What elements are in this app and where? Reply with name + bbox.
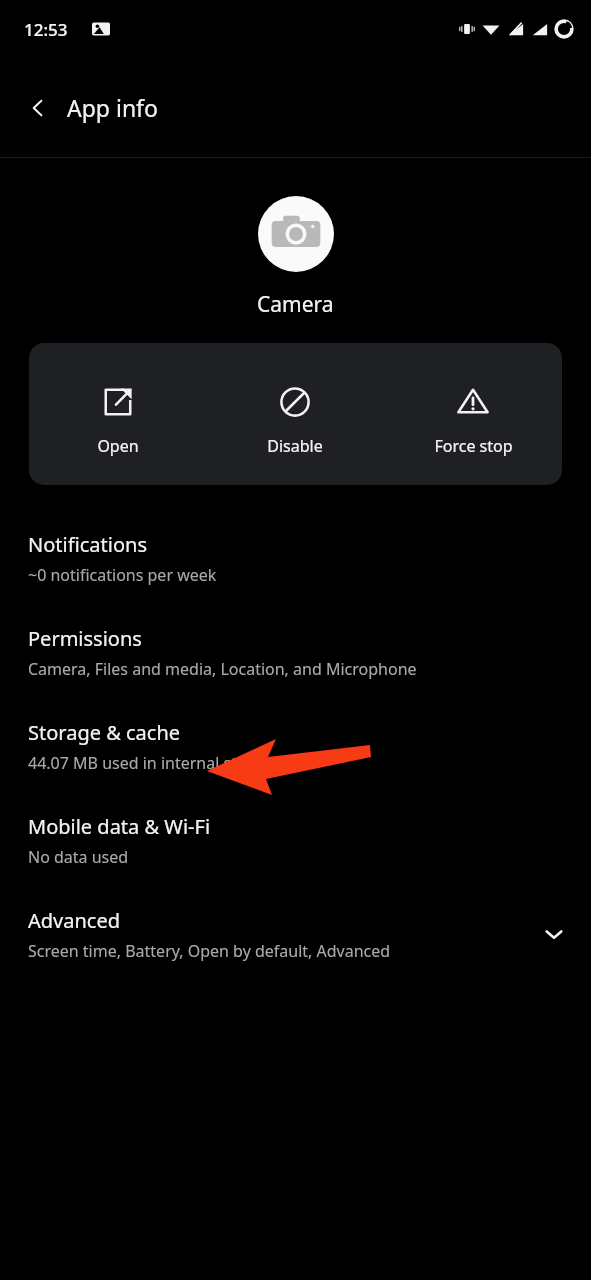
staticText: ~0 notifications per week (28, 564, 217, 586)
button[interactable]: Disable (206, 371, 384, 457)
staticText: Disable (267, 435, 323, 457)
staticText: Screen time, Battery, Open by default, A… (28, 940, 391, 962)
staticText: Permissions (28, 625, 142, 652)
staticText: Mobile data & Wi-Fi (28, 813, 211, 840)
staticText: Camera (257, 290, 334, 319)
button[interactable]: Open (29, 371, 206, 457)
staticText: Force stop (434, 435, 513, 457)
staticText: App info (67, 92, 158, 123)
button[interactable]: Back (14, 84, 62, 132)
staticText: Camera, Files and media, Location, and M… (28, 658, 417, 680)
button[interactable]: Advanced (0, 887, 591, 981)
staticText: Open (97, 435, 139, 457)
button[interactable]: Storage & cache (0, 699, 591, 793)
button[interactable]: Force stop (384, 371, 562, 457)
staticText: Storage & cache (28, 719, 181, 746)
staticText: Notifications (28, 531, 147, 558)
staticText: 12:53 (24, 18, 68, 41)
button[interactable]: Notifications (0, 511, 591, 605)
button[interactable]: Mobile data & Wi-Fi (0, 793, 591, 887)
staticText: Advanced (28, 907, 120, 934)
staticText: No data used (28, 846, 129, 868)
button[interactable]: Permissions (0, 605, 591, 699)
staticText: 44.07 MB used in internal storage (28, 752, 281, 774)
